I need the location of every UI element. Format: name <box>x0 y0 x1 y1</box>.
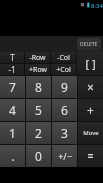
button[interactable]: +Col <box>51 64 76 75</box>
staticText: -1 <box>8 64 16 75</box>
button[interactable]: 5 <box>26 99 51 121</box>
staticText: 7 <box>9 79 16 95</box>
staticText: 1 <box>9 125 16 141</box>
button[interactable]: 1 <box>0 122 25 144</box>
button[interactable]: . <box>0 145 25 167</box>
staticText: +Row <box>29 65 47 75</box>
button[interactable]: 0 <box>26 145 51 167</box>
button[interactable]: -1 <box>0 64 24 75</box>
button[interactable]: Equals <box>78 145 103 167</box>
button[interactable]: 2 <box>26 122 51 144</box>
staticText: 4 <box>9 102 16 118</box>
button[interactable]: -Col <box>51 52 76 63</box>
button[interactable]: DELETE <box>77 38 101 51</box>
staticText: . <box>11 148 15 164</box>
staticText: 0 <box>35 148 42 164</box>
staticText: -Col <box>57 53 70 63</box>
staticText: DELETE <box>80 41 98 48</box>
button[interactable]: T <box>0 52 24 63</box>
staticText: 3 <box>61 125 68 141</box>
button[interactable]: +Row <box>25 64 50 75</box>
staticText: 8 <box>35 79 42 95</box>
button[interactable]: 4 <box>0 99 25 121</box>
button[interactable]: [ ] <box>77 52 103 75</box>
staticText: +Col <box>56 65 71 75</box>
button[interactable]: 9 <box>52 76 77 98</box>
staticText: + <box>87 102 94 118</box>
staticText: +/− <box>58 150 72 162</box>
button[interactable]: 3 <box>52 122 77 144</box>
staticText: 2 <box>35 125 42 141</box>
button[interactable]: × <box>78 76 103 98</box>
staticText: × <box>87 79 94 95</box>
button[interactable]: 8 <box>26 76 51 98</box>
staticText: 6 <box>61 102 68 118</box>
button[interactable]: Move <box>78 122 103 144</box>
button[interactable]: +/− <box>52 145 77 167</box>
staticText: -Row <box>29 53 46 63</box>
staticText: T <box>10 52 15 63</box>
staticText: [ ] <box>85 56 96 71</box>
button[interactable]: + <box>78 99 103 121</box>
button[interactable]: 7 <box>0 76 25 98</box>
staticText: 9 <box>61 79 68 95</box>
button[interactable]: -Row <box>25 52 50 63</box>
staticText: 8:34 <box>91 2 103 10</box>
staticText: Move <box>83 129 99 137</box>
staticText: 5 <box>35 102 42 118</box>
button[interactable]: 6 <box>52 99 77 121</box>
